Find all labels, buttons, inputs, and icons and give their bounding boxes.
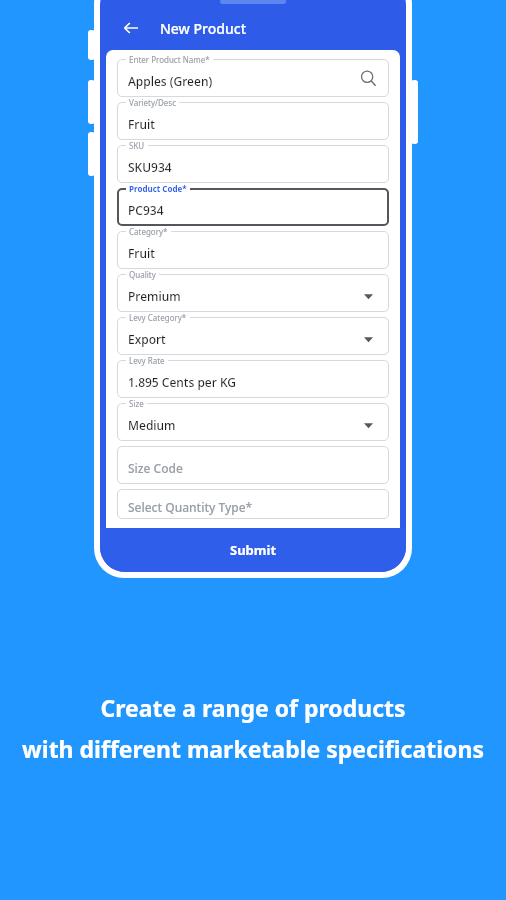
button[interactable]: Size Code: [117, 446, 389, 484]
staticText: SKU934: [128, 159, 172, 175]
staticText: Select Quantity Type*: [128, 499, 253, 515]
staticText: Size: [129, 398, 144, 409]
staticText: Enter Product Name*: [129, 54, 210, 65]
button[interactable]: Fruit: [117, 231, 389, 269]
staticText: Fruit: [128, 245, 155, 261]
button[interactable]: SKU934: [117, 145, 389, 183]
staticText: SKU: [129, 140, 145, 151]
staticText: Product Code*: [129, 183, 187, 194]
staticText: Medium: [128, 417, 176, 433]
button[interactable]: Open dropdown: [359, 287, 377, 305]
staticText: 1.895 Cents per KG: [128, 374, 237, 390]
staticText: Levy Rate: [129, 355, 165, 366]
staticText: with different marketable specifications: [22, 733, 484, 764]
button[interactable]: Search: [357, 67, 379, 89]
staticText: PC934: [128, 202, 164, 218]
staticText: Size Code: [128, 460, 183, 476]
staticText: Levy Category*: [129, 312, 187, 323]
staticText: Variety/Desc: [129, 97, 176, 108]
button[interactable]: Apples (Green): [117, 59, 389, 97]
staticText: Submit: [230, 541, 277, 559]
staticText: Apples (Green): [128, 73, 213, 89]
button[interactable]: Back: [114, 11, 148, 45]
staticText: Export: [128, 331, 166, 347]
button[interactable]: Medium: [117, 403, 389, 441]
staticText: Category*: [129, 226, 168, 237]
staticText: Create a range of products: [100, 692, 406, 723]
button[interactable]: Open dropdown: [359, 330, 377, 348]
staticText: Premium: [128, 288, 181, 304]
button[interactable]: Fruit: [117, 102, 389, 140]
staticText: Quality: [129, 269, 156, 280]
button[interactable]: Open dropdown: [359, 416, 377, 434]
staticText: Fruit: [128, 116, 155, 132]
button[interactable]: 1.895 Cents per KG: [117, 360, 389, 398]
button[interactable]: Submit: [100, 528, 406, 572]
staticText: New Product: [160, 19, 246, 38]
button[interactable]: Select Quantity Type*: [117, 489, 389, 519]
button[interactable]: Premium: [117, 274, 389, 312]
button[interactable]: PC934: [117, 188, 389, 226]
button[interactable]: Export: [117, 317, 389, 355]
